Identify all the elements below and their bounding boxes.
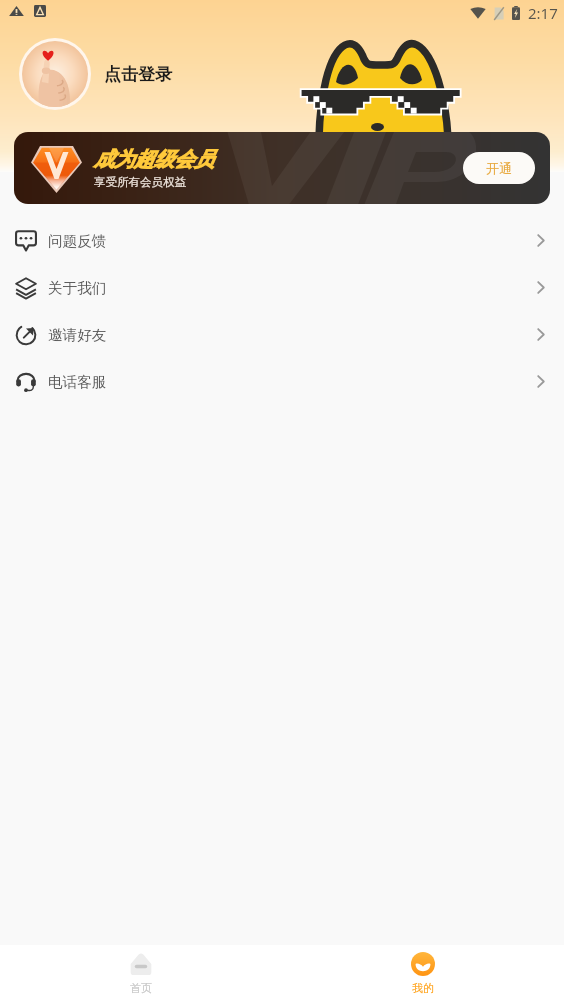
button[interactable]: 邀请好友 bbox=[0, 311, 564, 358]
staticText: 点击登录 bbox=[104, 64, 172, 85]
button[interactable]: 关于我们 bbox=[0, 264, 564, 311]
staticText: 邀请好友 bbox=[48, 326, 107, 344]
staticText: 享受所有会员权益 bbox=[94, 175, 186, 189]
staticText: 关于我们 bbox=[48, 279, 107, 297]
button[interactable]: 开通 bbox=[463, 152, 535, 184]
staticText: 首页 bbox=[130, 981, 152, 995]
button[interactable]: 我的 bbox=[282, 945, 564, 1002]
staticText: 我的 bbox=[412, 981, 434, 995]
button[interactable]: 成为超级会员 bbox=[14, 132, 550, 204]
button[interactable]: 电话客服 bbox=[0, 358, 564, 405]
staticText: 电话客服 bbox=[48, 373, 107, 391]
button[interactable]: 问题反馈 bbox=[0, 217, 564, 264]
button[interactable]: 用户头像 bbox=[19, 38, 172, 110]
staticText: 开通 bbox=[486, 160, 512, 176]
staticText: 2:17 bbox=[528, 3, 558, 23]
staticText: 成为超级会员 bbox=[94, 147, 214, 172]
staticText: 问题反馈 bbox=[48, 232, 107, 250]
button[interactable]: 首页 bbox=[0, 945, 282, 1002]
button[interactable]: 用户头像 bbox=[19, 38, 91, 110]
